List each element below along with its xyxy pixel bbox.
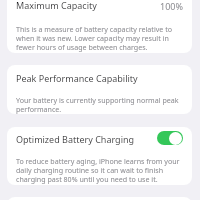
staticText: Optimized Battery Charging [16,133,135,145]
staticText: Peak Performance Capability [16,72,138,84]
button[interactable]: Optimized Battery Charging toggle [157,131,183,145]
staticText: 100% [160,0,183,12]
button[interactable] [7,0,192,12]
staticText: To reduce battery aging, iPhone learns f… [16,156,180,184]
staticText: Maximum Capacity [16,0,97,11]
button[interactable] [7,65,192,114]
staticText: Your battery is currently supporting nor… [16,95,179,114]
staticText: This is a measure of battery capacity re… [16,24,173,52]
